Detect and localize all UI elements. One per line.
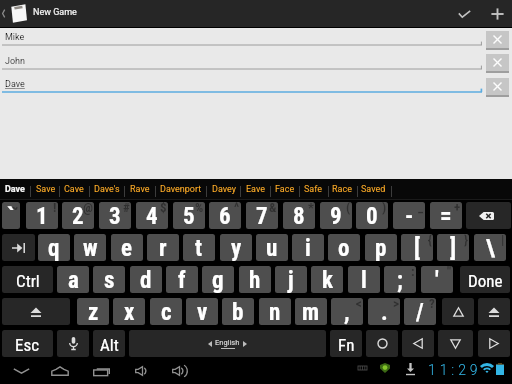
button[interactable]: Davenport — [160, 184, 202, 195]
button[interactable]: x — [113, 298, 145, 325]
button[interactable]: # — [99, 202, 131, 229]
button[interactable]: w — [74, 234, 106, 261]
button[interactable]: o — [328, 234, 360, 261]
button[interactable]: Player name John — [2, 64, 482, 71]
button[interactable]: Hide keyboard — [2, 358, 40, 384]
button[interactable]: Arrow down — [438, 330, 473, 357]
button[interactable]: Shift — [478, 298, 510, 325]
staticText: o — [338, 235, 350, 261]
button[interactable]: : — [384, 266, 416, 293]
button[interactable]: h — [239, 266, 271, 293]
button[interactable]: & — [246, 202, 278, 229]
button[interactable]: Volume up — [160, 358, 198, 384]
button[interactable]: " — [421, 266, 453, 293]
staticText: English — [215, 338, 240, 347]
button[interactable]: u — [256, 234, 288, 261]
staticText: Done — [468, 271, 503, 291]
button[interactable]: Fn — [330, 330, 362, 357]
staticText: " — [447, 266, 452, 279]
button[interactable]: + — [430, 202, 462, 229]
button[interactable]: ~ — [2, 202, 20, 229]
button[interactable]: t — [183, 234, 215, 261]
button[interactable]: Alt — [93, 330, 125, 357]
button[interactable]: Save — [36, 184, 56, 195]
button[interactable]: Saved — [361, 184, 386, 195]
button[interactable]: _ — [393, 202, 425, 229]
button[interactable]: ? — [404, 298, 436, 325]
button[interactable]: $ — [136, 202, 168, 229]
button[interactable]: | — [474, 234, 506, 261]
button[interactable]: Safe — [304, 184, 323, 195]
button[interactable]: < — [331, 298, 363, 325]
button[interactable]: c — [150, 298, 182, 325]
button[interactable]: e — [111, 234, 143, 261]
button[interactable]: ) — [356, 202, 388, 229]
button[interactable]: Home — [41, 358, 79, 384]
button[interactable]: a — [57, 266, 89, 293]
button[interactable]: Arrow right — [478, 330, 510, 357]
button[interactable]: Save — [446, 0, 482, 27]
button[interactable]: b — [222, 298, 254, 325]
staticText: < — [356, 298, 362, 311]
button[interactable]: % — [173, 202, 205, 229]
button[interactable]: Done — [460, 266, 510, 293]
button[interactable]: { — [401, 234, 433, 261]
button[interactable]: Player name Mike — [2, 40, 482, 47]
button[interactable]: Face — [275, 184, 295, 195]
button[interactable]: Race — [332, 184, 352, 195]
button[interactable]: Dave — [5, 184, 25, 195]
button[interactable]: Volume down — [121, 358, 159, 384]
button[interactable]: > — [368, 298, 400, 325]
button[interactable]: k — [311, 266, 343, 293]
button[interactable]: n — [259, 298, 291, 325]
button[interactable]: s — [93, 266, 125, 293]
button[interactable]: Add player — [479, 0, 512, 27]
button[interactable]: @ — [62, 202, 94, 229]
button[interactable]: Navigate up — [0, 0, 30, 27]
button[interactable]: m — [295, 298, 327, 325]
button[interactable]: Remove John — [486, 54, 509, 73]
button[interactable]: Rave — [130, 184, 150, 195]
button[interactable]: Voice input — [57, 330, 89, 357]
button[interactable]: z — [77, 298, 109, 325]
button[interactable]: Keyboard settings — [366, 330, 398, 357]
button[interactable]: q — [38, 234, 70, 261]
button[interactable]: Remove Mike — [486, 31, 509, 50]
button[interactable]: * — [283, 202, 315, 229]
button[interactable]: Recent apps — [82, 358, 120, 384]
button[interactable]: Davey — [212, 184, 237, 195]
button[interactable]: y — [220, 234, 252, 261]
button[interactable]: ^ — [209, 202, 241, 229]
button[interactable]: j — [275, 266, 307, 293]
button[interactable]: v — [186, 298, 218, 325]
button[interactable]: Dave's — [94, 184, 120, 195]
button[interactable]: Esc — [2, 330, 53, 357]
button[interactable]: Cave — [64, 184, 84, 195]
staticText: ! — [53, 202, 57, 215]
button[interactable]: Arrow left — [402, 330, 434, 357]
button[interactable]: } — [437, 234, 469, 261]
button[interactable]: r — [147, 234, 179, 261]
button[interactable]: Eave — [246, 184, 266, 195]
button[interactable]: ( — [320, 202, 352, 229]
staticText: 9 — [330, 203, 342, 229]
button[interactable]: Player name Dave — [2, 87, 482, 94]
staticText: 0 — [366, 203, 378, 229]
button[interactable]: Arrow up — [442, 298, 474, 325]
button[interactable]: Space — [129, 330, 326, 357]
staticText: Fn — [338, 335, 355, 355]
button[interactable]: g — [202, 266, 234, 293]
button[interactable]: ! — [26, 202, 58, 229]
button[interactable]: Shift — [2, 298, 70, 325]
button[interactable]: d — [130, 266, 162, 293]
button[interactable]: Ctrl — [2, 266, 53, 293]
staticText: ' — [435, 267, 439, 293]
button[interactable]: Remove Dave — [486, 78, 509, 97]
button[interactable]: i — [292, 234, 324, 261]
staticText: n — [269, 299, 281, 325]
button[interactable]: Tab — [2, 234, 35, 261]
button[interactable]: Backspace — [466, 202, 511, 229]
button[interactable]: f — [166, 266, 198, 293]
button[interactable]: l — [348, 266, 380, 293]
button[interactable]: p — [365, 234, 397, 261]
